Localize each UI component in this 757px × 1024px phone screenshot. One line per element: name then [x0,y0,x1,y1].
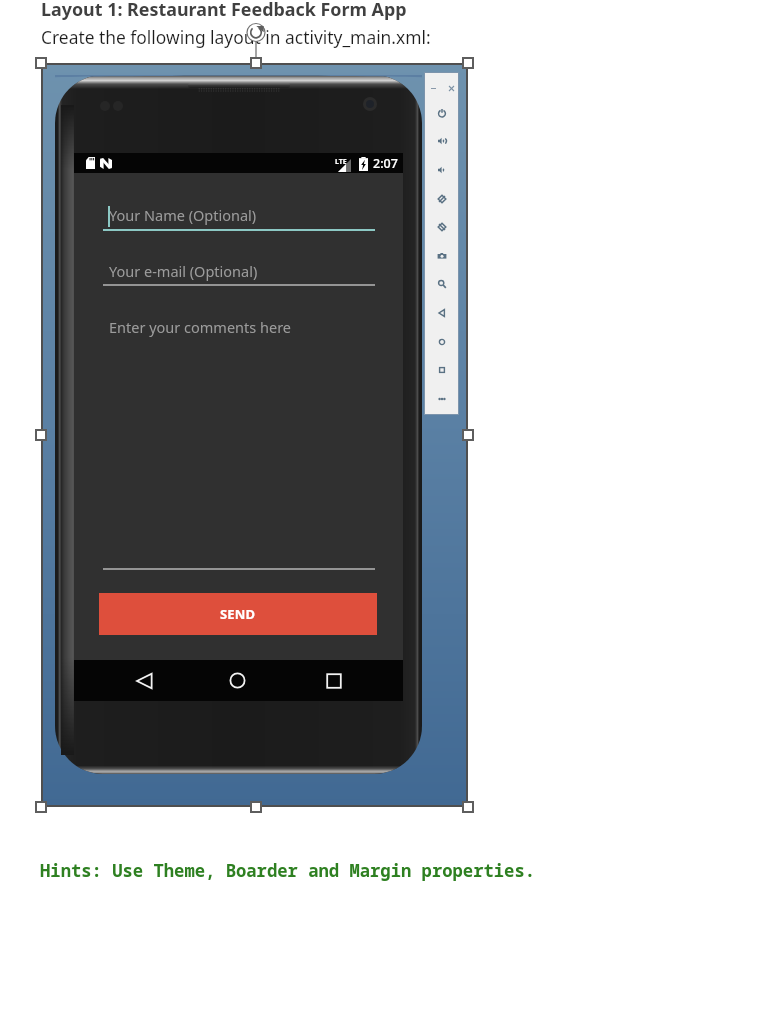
staticText: Your Name (Optional) [109,205,257,225]
button[interactable]: Enter your comments here [103,317,375,570]
staticText: Hints: Use Theme, Boarder and Margin pro… [40,859,536,882]
button[interactable]: Rotate right [424,213,459,241]
button[interactable]: SEND [99,593,377,635]
button[interactable]: Power [424,99,459,127]
button[interactable]: Back [116,660,172,701]
button[interactable]: Home [424,328,459,356]
button[interactable]: Back [424,299,459,327]
button[interactable]: Minimise [426,81,440,95]
button[interactable]: Home [209,660,266,701]
button[interactable]: Close [444,81,458,95]
staticText: Enter your comments here [109,317,292,337]
staticText: LTE [335,157,347,167]
button[interactable]: More [424,385,459,413]
button[interactable]: Your e-mail (Optional) [103,261,375,286]
staticText: Your e-mail (Optional) [109,261,258,281]
staticText: SEND [220,605,256,623]
staticText: 2:07 [373,155,398,172]
staticText: Layout 1: Restaurant Feedback Form App [41,0,407,21]
button[interactable]: Volume up [424,127,459,155]
button[interactable]: Screenshot [424,242,459,270]
button[interactable]: Your Name (Optional) [103,205,375,232]
button[interactable]: Volume down [424,156,459,184]
button[interactable]: Rotate left [424,185,459,213]
button[interactable]: Overview [424,356,459,384]
staticText: Create the following layout in activity_… [41,25,431,49]
button[interactable]: Zoom [424,270,459,298]
button[interactable]: Recents [305,660,362,701]
